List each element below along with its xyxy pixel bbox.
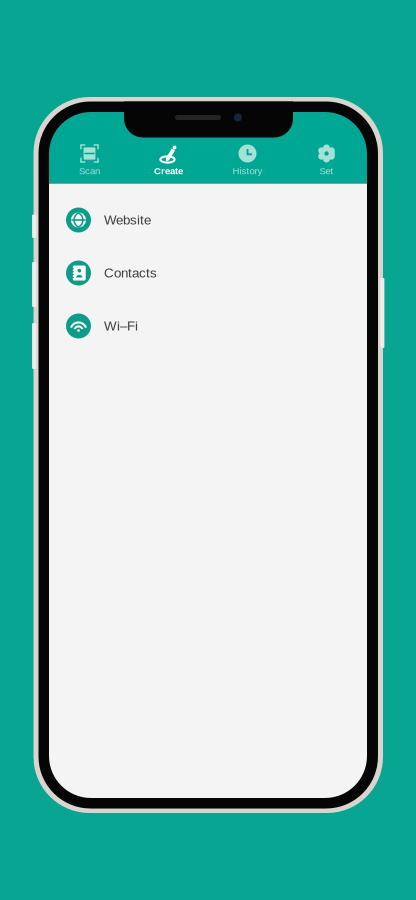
- button[interactable]: Wi–Fi: [49, 299, 367, 352]
- button[interactable]: Website: [49, 193, 367, 246]
- staticText: Create: [154, 166, 183, 176]
- button[interactable]: Scan: [50, 135, 129, 183]
- button[interactable]: History: [208, 135, 287, 183]
- staticText: History: [232, 166, 262, 176]
- staticText: Website: [104, 213, 151, 227]
- staticText: Scan: [79, 166, 100, 176]
- button[interactable]: Create: [129, 135, 208, 183]
- staticText: Wi–Fi: [104, 319, 138, 333]
- staticText: Set: [319, 166, 333, 176]
- button[interactable]: Contacts: [49, 246, 367, 299]
- staticText: Contacts: [104, 266, 157, 280]
- button[interactable]: Set: [287, 135, 366, 183]
